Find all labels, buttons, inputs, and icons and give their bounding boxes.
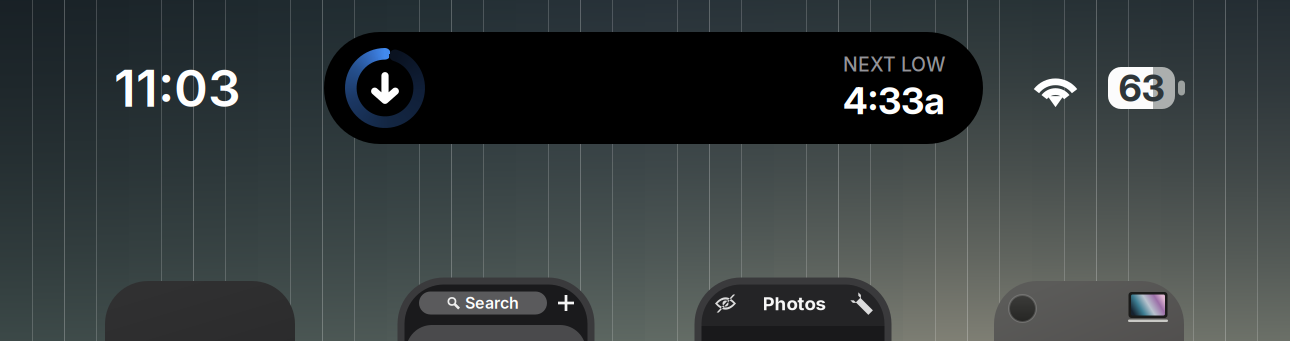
button[interactable]: Photos (698, 281, 888, 341)
staticText: 11:03 (114, 57, 241, 119)
button[interactable]: Tide Live Activity, next low 4:33a (324, 32, 983, 144)
staticText: 4:33a (843, 78, 945, 123)
staticText: 63 (1118, 65, 1164, 111)
button[interactable]: Reminders (401, 281, 591, 341)
staticText: Photos (762, 292, 825, 315)
button[interactable]: App (105, 281, 295, 341)
button[interactable]: Camera (994, 281, 1184, 341)
staticText: NEXT LOW (843, 53, 945, 76)
staticText: Search (465, 293, 519, 313)
